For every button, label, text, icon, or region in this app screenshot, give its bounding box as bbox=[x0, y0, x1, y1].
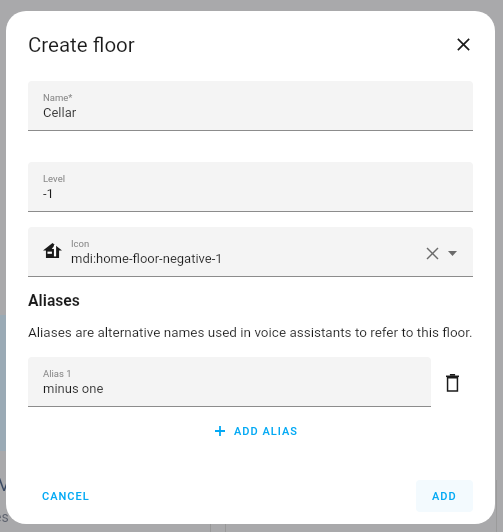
staticText: minus one bbox=[43, 381, 104, 396]
staticText: V bbox=[0, 473, 11, 495]
staticText: Cellar bbox=[43, 105, 77, 120]
button[interactable]: Clear icon bbox=[416, 237, 448, 269]
staticText: Alias 1 bbox=[43, 368, 72, 379]
button[interactable]: Close bbox=[445, 26, 481, 62]
staticText: Level bbox=[43, 173, 65, 184]
staticText: Name* bbox=[43, 92, 73, 103]
button[interactable]: Open icon picker bbox=[438, 239, 466, 267]
staticText: Icon bbox=[71, 238, 90, 249]
staticText: -1 bbox=[43, 186, 54, 201]
button[interactable]: ADD ALIAS bbox=[199, 418, 314, 444]
staticText: Aliases are alternative names used in vo… bbox=[28, 324, 473, 340]
staticText: es bbox=[0, 509, 9, 525]
staticText: CANCEL bbox=[42, 490, 90, 503]
staticText: ADD ALIAS bbox=[234, 425, 298, 438]
button[interactable]: ADD bbox=[416, 480, 473, 512]
button[interactable]: Name* bbox=[28, 81, 473, 130]
button[interactable]: Icon bbox=[28, 227, 473, 276]
button[interactable]: CANCEL bbox=[34, 480, 98, 512]
staticText: mdi:home-floor-negative-1 bbox=[71, 251, 223, 266]
staticText: Aliases bbox=[28, 291, 80, 309]
button[interactable]: Delete alias bbox=[433, 363, 471, 401]
staticText: ADD bbox=[432, 490, 457, 503]
button[interactable]: Alias 1 bbox=[28, 357, 431, 406]
button[interactable]: Level bbox=[28, 162, 473, 211]
staticText: Create floor bbox=[28, 33, 135, 57]
